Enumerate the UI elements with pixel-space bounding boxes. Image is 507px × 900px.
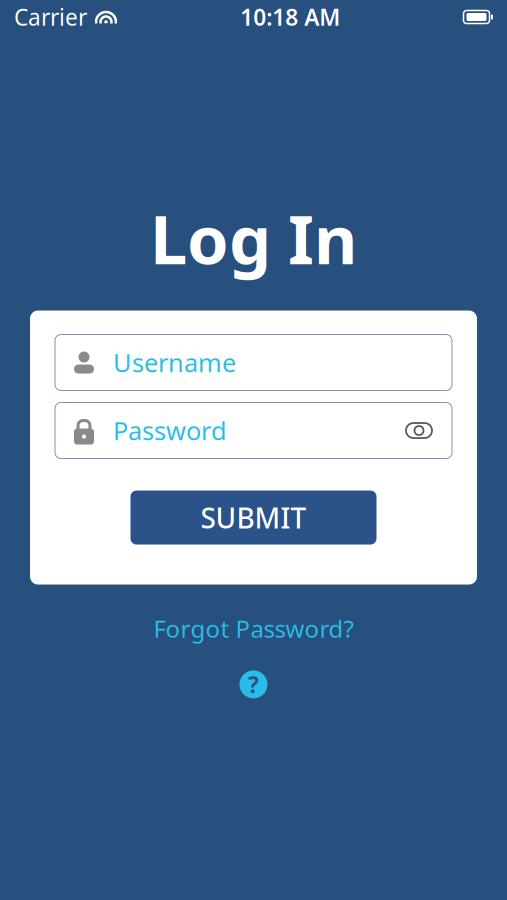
staticText: Username: [113, 346, 236, 379]
staticText: Carrier: [14, 2, 87, 32]
staticText: Password: [113, 414, 227, 447]
button[interactable]: Forgot Password?: [141, 606, 365, 650]
staticText: SUBMIT: [200, 499, 306, 536]
staticText: Log In: [150, 194, 357, 282]
staticText: ?: [248, 669, 259, 699]
button[interactable]: Username: [55, 334, 452, 390]
staticText: Forgot Password?: [153, 612, 353, 644]
button[interactable]: Password: [55, 402, 452, 458]
button[interactable]: Help: [235, 666, 271, 702]
staticText: 10:18 AM: [240, 2, 340, 32]
button[interactable]: SUBMIT: [130, 490, 376, 544]
button[interactable]: Show password: [404, 418, 434, 442]
